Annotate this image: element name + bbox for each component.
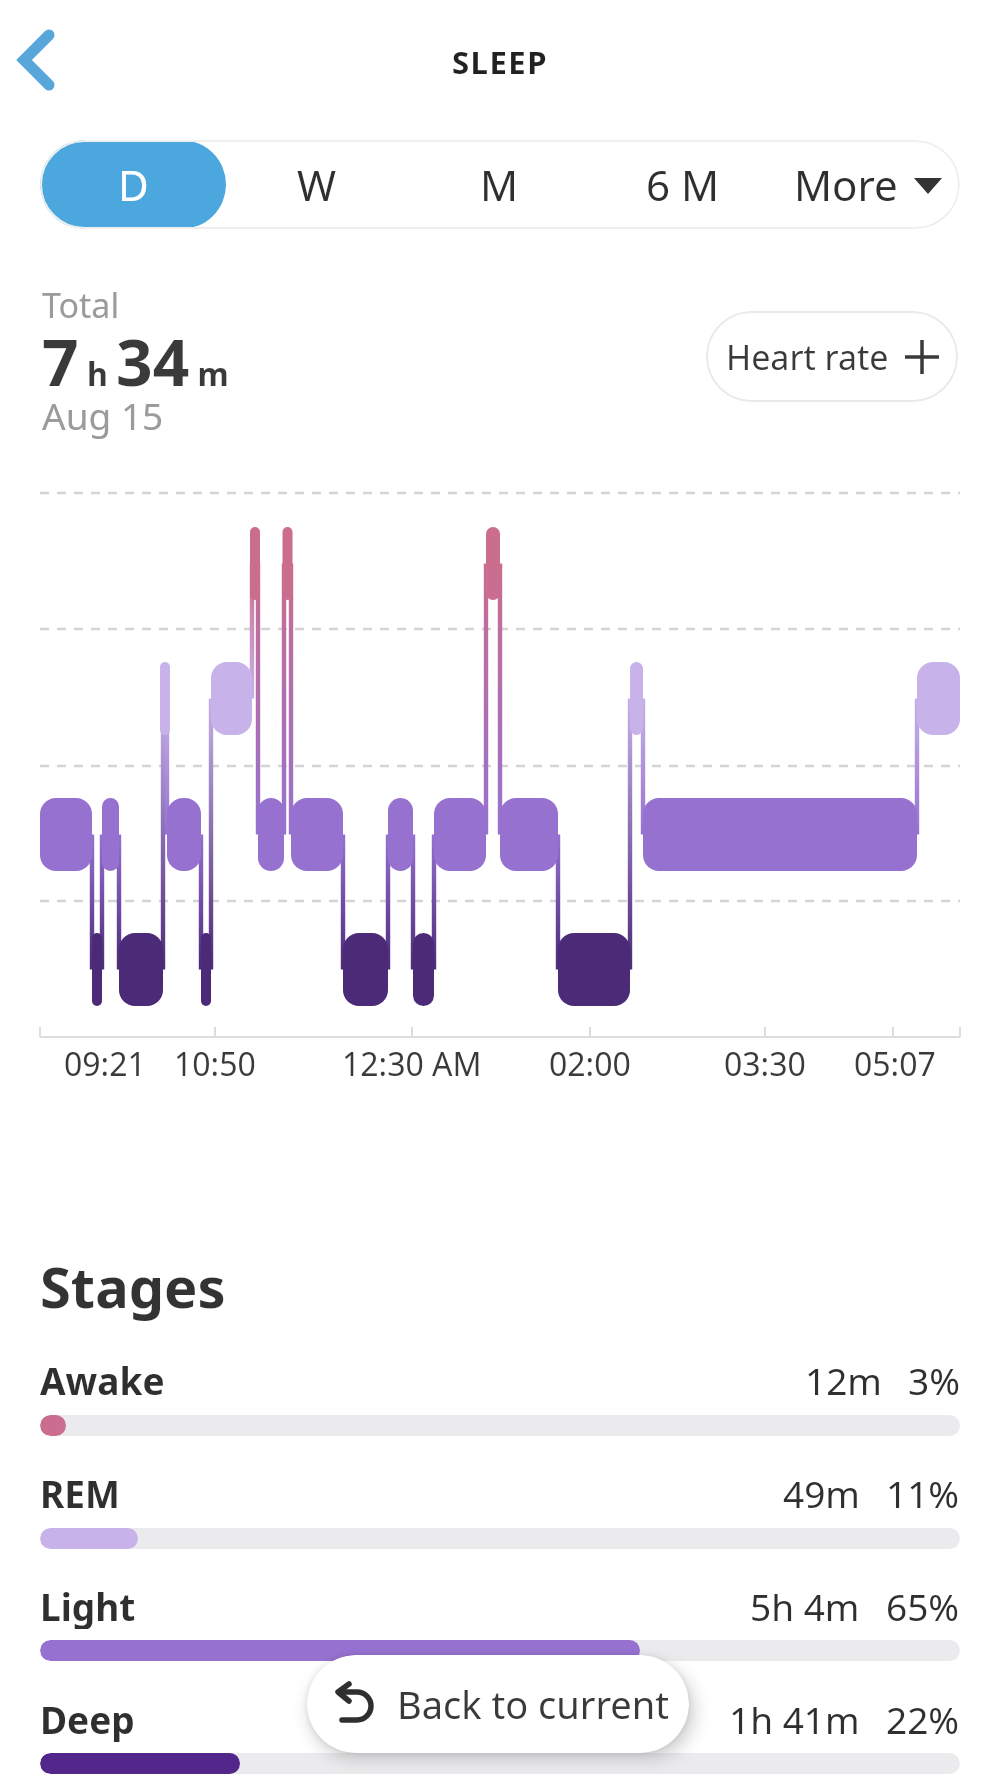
staticText: Awake: [40, 1355, 165, 1403]
staticText: Aug 15: [42, 390, 164, 440]
staticText: 11%: [886, 1468, 960, 1516]
button[interactable]: D: [40, 140, 226, 229]
button[interactable]: Heart rate: [706, 311, 958, 402]
button[interactable]: Light: [40, 1581, 960, 1629]
staticText: 12m: [805, 1355, 882, 1403]
button[interactable]: Back to current: [307, 1655, 689, 1753]
staticText: W: [297, 156, 337, 213]
button[interactable]: More: [776, 140, 960, 229]
staticText: 65%: [886, 1581, 960, 1629]
staticText: M: [480, 156, 519, 213]
button[interactable]: M: [408, 140, 590, 229]
button[interactable]: [4, 22, 74, 102]
button[interactable]: REM: [40, 1468, 960, 1516]
staticText: More: [794, 156, 898, 213]
staticText: 3%: [908, 1355, 960, 1403]
staticText: REM: [40, 1468, 120, 1516]
staticText: 10:50: [174, 1042, 256, 1082]
staticText: 5h 4m: [750, 1581, 860, 1629]
button[interactable]: Deep: [40, 1694, 960, 1742]
staticText: SLEEP: [452, 41, 548, 83]
staticText: 09:21: [64, 1042, 146, 1082]
staticText: 05:07: [854, 1042, 936, 1082]
staticText: 03:30: [724, 1042, 806, 1082]
staticText: 1h 41m: [729, 1694, 860, 1742]
staticText: Light: [40, 1581, 136, 1629]
staticText: Deep: [40, 1694, 135, 1742]
staticText: Stages: [40, 1248, 226, 1324]
staticText: 12:30 AM: [342, 1042, 482, 1082]
button[interactable]: W: [226, 140, 408, 229]
staticText: Total: [42, 282, 120, 328]
staticText: Back to current: [397, 1678, 670, 1730]
staticText: D: [118, 156, 149, 213]
button[interactable]: 6 M: [590, 140, 776, 229]
staticText: 7 h 34 m: [42, 318, 229, 405]
staticText: Heart rate: [726, 334, 889, 380]
staticText: 22%: [886, 1694, 960, 1742]
button[interactable]: Awake: [40, 1355, 960, 1403]
staticText: 02:00: [549, 1042, 631, 1082]
staticText: 49m: [783, 1468, 860, 1516]
staticText: 6 M: [646, 156, 720, 213]
